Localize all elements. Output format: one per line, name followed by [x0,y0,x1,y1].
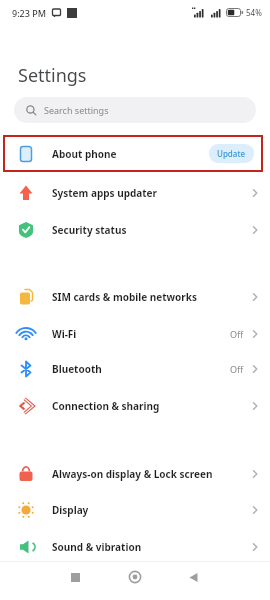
staticText: 9:23 PM [12,7,46,19]
staticText: Connection & sharing [52,399,160,413]
staticText: Off [230,328,244,340]
staticText: Settings [18,63,87,88]
button[interactable]: About phone [3,135,263,172]
button[interactable]: System apps updater [0,174,270,211]
staticText: Security status [52,223,127,237]
staticText: Bluetooth [52,362,102,376]
button[interactable]: Sound & vibration [0,528,270,565]
button[interactable]: SIM cards & mobile networks [0,278,270,315]
staticText: System apps updater [52,186,158,200]
button[interactable]: Always-on display & Lock screen [0,455,270,492]
button[interactable]: Security status [0,211,270,248]
staticText: Off [230,363,244,375]
staticText: Always-on display & Lock screen [52,467,213,481]
button[interactable] [62,564,88,590]
button[interactable]: Display [0,491,270,528]
button[interactable]: Connection & sharing [0,387,270,424]
staticText: Display [52,503,89,517]
staticText: Wi-Fi [52,327,77,341]
staticText: Search settings [44,104,109,116]
staticText: Update [217,148,246,159]
button[interactable] [122,564,148,590]
button[interactable] [180,564,206,590]
staticText: About phone [52,147,117,161]
button[interactable]: Wi-Fi [0,315,270,352]
button[interactable]: Search settings [14,97,256,123]
staticText: 54% [246,7,262,18]
staticText: SIM cards & mobile networks [52,290,198,304]
staticText: Sound & vibration [52,540,142,554]
button[interactable]: Bluetooth [0,350,270,387]
